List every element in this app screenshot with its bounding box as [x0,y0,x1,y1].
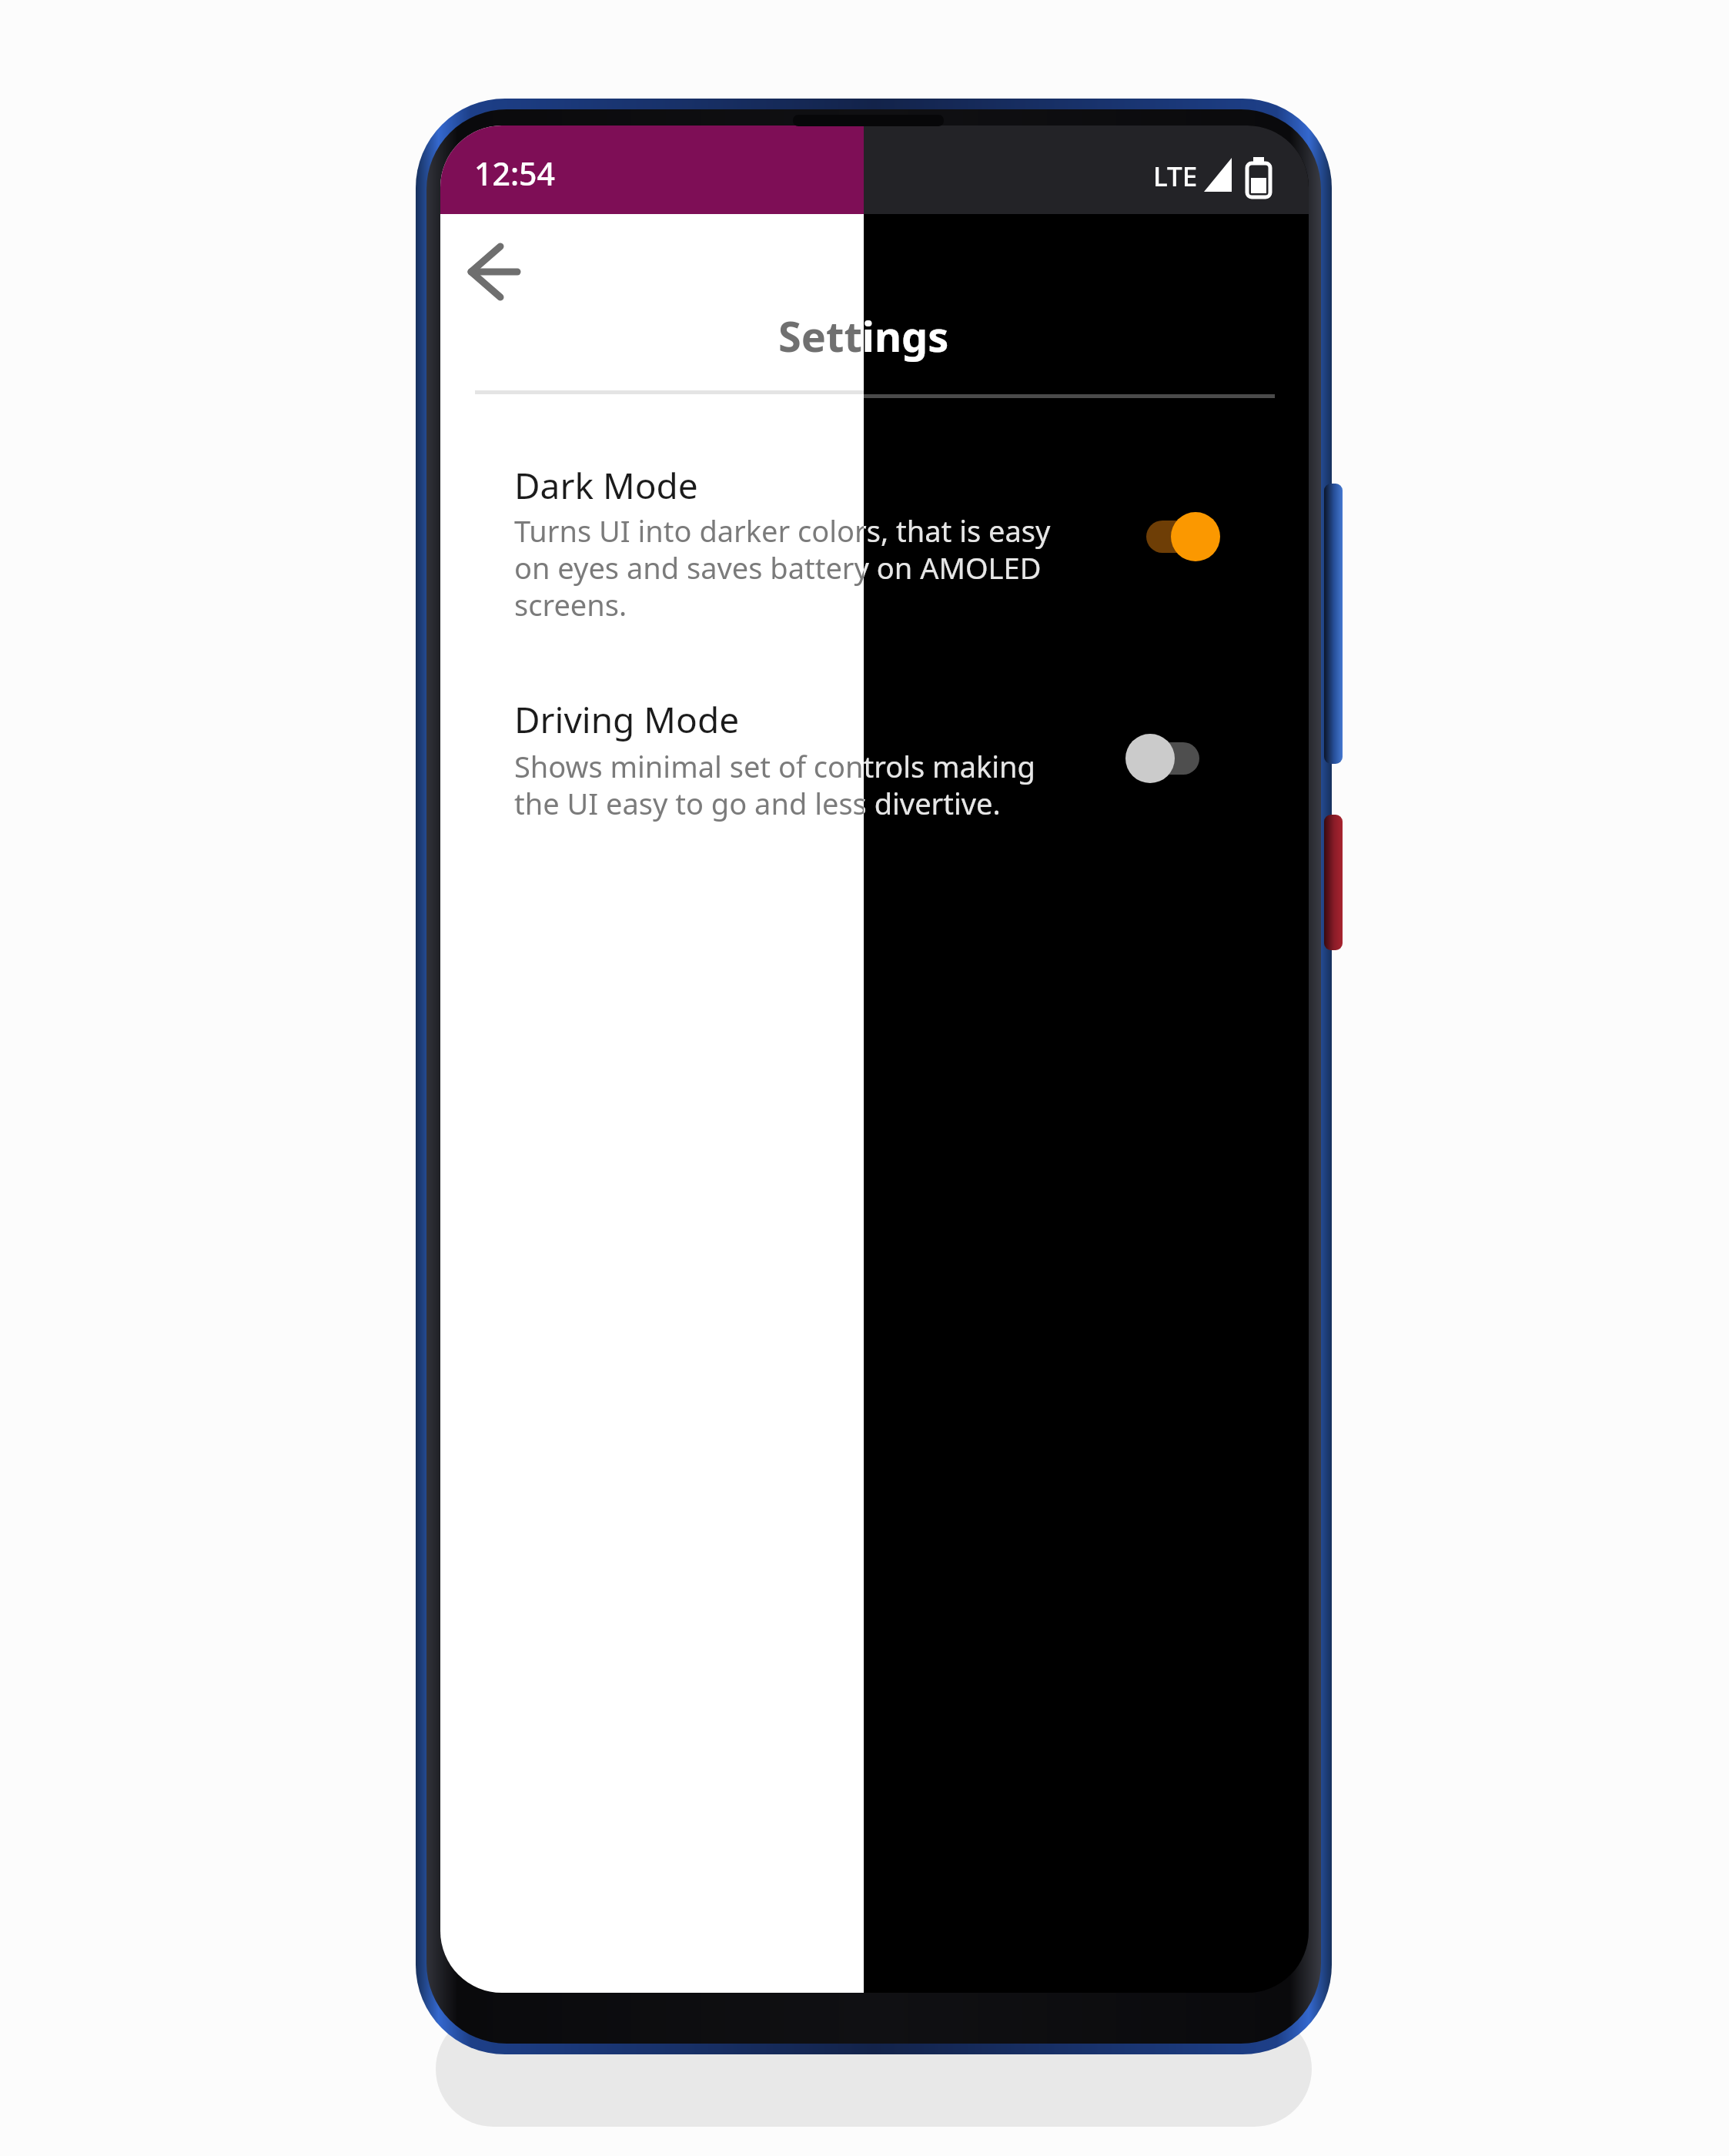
button[interactable] [462,681,1262,822]
button[interactable] [462,445,1262,624]
button[interactable]: Dark Mode switch, on [1132,500,1239,574]
button[interactable]: Back [454,231,540,317]
button[interactable]: Driving Mode switch, off [1115,722,1222,796]
